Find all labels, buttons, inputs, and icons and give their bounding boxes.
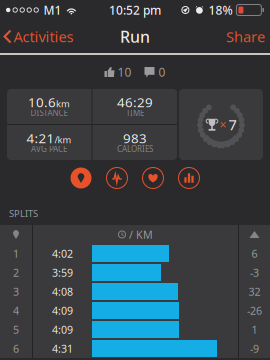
button[interactable]: 3: [0, 282, 270, 301]
staticText: Run: [120, 26, 150, 47]
button[interactable]: Map: [63, 161, 99, 195]
staticText: -26: [247, 303, 262, 318]
staticText: 7: [228, 115, 236, 134]
staticText: 3:59: [52, 265, 73, 280]
staticText: TIME: [126, 108, 144, 118]
button[interactable]: 2: [0, 263, 270, 282]
staticText: 10: [117, 64, 131, 80]
staticText: AVG PACE: [31, 144, 67, 154]
staticText: Activities: [13, 27, 73, 46]
button[interactable]: Heart rate: [135, 161, 171, 195]
button[interactable]: Splits chart: [171, 161, 207, 195]
staticText: -9: [250, 341, 259, 356]
staticText: DISTANCE: [30, 108, 67, 118]
staticText: 10.6: [28, 93, 56, 111]
staticText: 4: [13, 303, 19, 318]
staticText: 10:52 pm: [109, 2, 161, 18]
staticText: 5: [13, 322, 19, 337]
staticText: M1: [43, 2, 61, 18]
staticText: 3: [13, 284, 19, 299]
staticText: ×: [219, 116, 226, 132]
staticText: 18%: [208, 2, 232, 18]
staticText: 0: [158, 64, 165, 80]
staticText: 32: [248, 284, 260, 299]
staticText: 46:29: [117, 93, 153, 111]
staticText: 4:21: [26, 129, 54, 147]
staticText: SPLITS: [9, 207, 38, 220]
staticText: -3: [250, 265, 259, 280]
staticText: 4:08: [52, 284, 73, 299]
staticText: 4:31: [52, 341, 73, 356]
staticText: 1: [13, 246, 19, 261]
button[interactable]: Activities: [0, 21, 81, 51]
staticText: CALORIES: [117, 144, 153, 154]
button[interactable]: Share: [218, 21, 270, 51]
staticText: 6: [251, 246, 257, 261]
button[interactable]: Pace graph: [99, 161, 135, 195]
button[interactable]: 6: [0, 339, 270, 358]
staticText: / KM: [129, 227, 153, 242]
staticText: km: [56, 97, 70, 110]
button[interactable]: 1: [0, 244, 270, 263]
staticText: 983: [123, 129, 147, 147]
staticText: 4:09: [52, 322, 73, 337]
staticText: 4:02: [52, 246, 73, 261]
button[interactable]: 4: [0, 301, 270, 320]
staticText: Share: [226, 27, 265, 46]
staticText: 2: [13, 265, 19, 280]
staticText: 6: [13, 341, 19, 356]
staticText: /km: [54, 133, 71, 146]
staticText: 1: [251, 322, 257, 337]
button[interactable]: 5: [0, 320, 270, 339]
staticText: 4:09: [52, 303, 73, 318]
